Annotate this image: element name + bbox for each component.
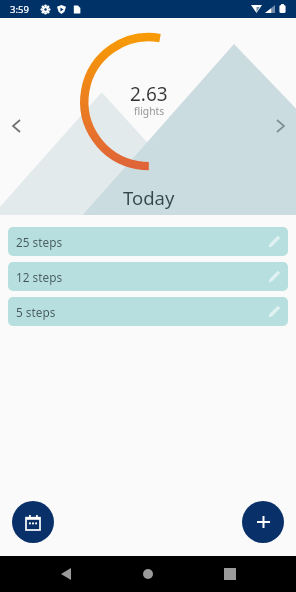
button[interactable]: 12 steps bbox=[8, 262, 288, 291]
button[interactable]: Next day bbox=[267, 113, 293, 139]
button[interactable]: Previous day bbox=[3, 113, 29, 139]
staticText: 2.63 bbox=[130, 81, 168, 107]
staticText: 25 steps bbox=[16, 234, 63, 250]
staticText: 3:59 bbox=[10, 3, 29, 16]
button[interactable]: Open calendar bbox=[12, 501, 54, 543]
button[interactable]: Add entry bbox=[242, 501, 284, 543]
button[interactable]: Back bbox=[44, 556, 88, 592]
staticText: Today bbox=[123, 185, 175, 210]
staticText: flights bbox=[134, 104, 165, 118]
button[interactable]: 25 steps bbox=[8, 227, 288, 256]
button[interactable]: Home bbox=[126, 556, 170, 592]
staticText: 12 steps bbox=[16, 269, 63, 285]
button[interactable]: Recent apps bbox=[208, 556, 252, 592]
button[interactable]: 5 steps bbox=[8, 297, 288, 326]
staticText: 5 steps bbox=[16, 304, 56, 320]
